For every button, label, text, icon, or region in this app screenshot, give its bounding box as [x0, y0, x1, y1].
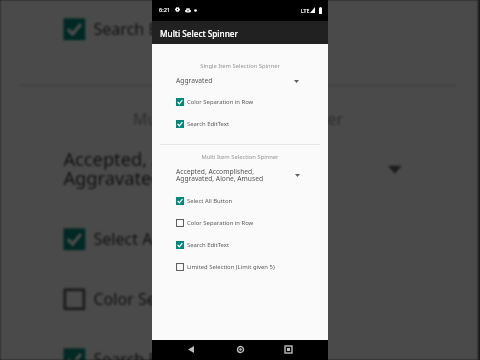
- staticText: Accepted, Accomplished,: [176, 167, 254, 176]
- staticText: LTE: [301, 7, 310, 14]
- staticText: Multi Select Spinner: [160, 28, 238, 39]
- staticText: Aggravated: [176, 76, 213, 85]
- button[interactable]: Open spinner: [289, 74, 303, 88]
- button[interactable]: Back: [181, 340, 200, 359]
- staticText: Accepted, Accomplished,: [63, 146, 276, 171]
- button[interactable]: Open spinner: [374, 149, 413, 187]
- staticText: 6:21: [159, 6, 171, 14]
- staticText: Multi Item Selection Spinner: [0, 108, 478, 130]
- button[interactable]: Accepted, Accomplished,: [176, 164, 352, 183]
- staticText: Limited Selection (Limit given 5): [187, 263, 275, 271]
- button[interactable]: Home: [231, 340, 250, 359]
- button[interactable]: Accepted, Accomplished,: [63, 138, 480, 190]
- staticText: Single Item Selection Spinner: [152, 62, 328, 70]
- staticText: Aggravated, Alone, Amused: [176, 174, 264, 183]
- button[interactable]: Search EditText: [152, 238, 328, 252]
- staticText: Search EditText: [187, 241, 230, 249]
- staticText: Color Separation in Row: [187, 219, 254, 227]
- button[interactable]: Search EditText: [152, 117, 328, 131]
- button[interactable]: Open spinner: [290, 168, 304, 182]
- button[interactable]: Color Separation in Row: [0, 280, 478, 318]
- staticText: Search EditText: [93, 348, 211, 360]
- button[interactable]: Aggravated: [176, 73, 352, 86]
- button[interactable]: Search EditText: [0, 10, 478, 48]
- staticText: Color Separation in Row: [187, 98, 254, 106]
- button[interactable]: Search EditText: [0, 340, 478, 360]
- button[interactable]: Color Separation in Row: [152, 95, 328, 109]
- staticText: Color Separation in Row: [93, 288, 276, 310]
- staticText: Search EditText: [93, 18, 211, 40]
- staticText: Select All Button: [187, 197, 233, 205]
- staticText: Aggravated, Alone, Amused: [63, 166, 303, 190]
- button[interactable]: Recent apps: [279, 340, 298, 359]
- button[interactable]: Select All Button: [0, 220, 478, 258]
- button[interactable]: Limited Selection (Limit given 5): [152, 260, 328, 274]
- button[interactable]: Color Separation in Row: [152, 216, 328, 230]
- staticText: Search EditText: [187, 120, 230, 128]
- staticText: Select All Button: [93, 228, 219, 250]
- button[interactable]: Select All Button: [152, 194, 328, 208]
- staticText: Multi Item Selection Spinner: [152, 153, 328, 161]
